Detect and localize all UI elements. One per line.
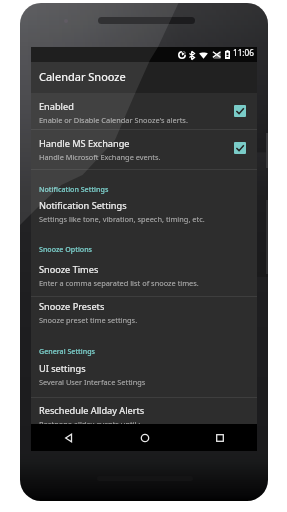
- button[interactable]: Toggle Handle MS Exchange: [234, 142, 246, 154]
- staticText: Snooze Presets: [39, 300, 105, 313]
- staticText: Handle MS Exchange: [39, 137, 130, 150]
- staticText: Enter a comma separated list of snooze t…: [39, 278, 244, 288]
- staticText: Snooze preset time settings.: [39, 315, 244, 325]
- staticText: Notification Settings: [39, 199, 127, 212]
- staticText: 11:06: [233, 47, 254, 58]
- staticText: Notification Settings: [39, 184, 109, 194]
- staticText: Enable or Disable Calendar Snooze's aler…: [39, 115, 244, 125]
- staticText: Several User Interface Settings: [39, 377, 244, 387]
- staticText: Settings like tone, vibration, speech, t…: [39, 214, 244, 224]
- button[interactable]: Home: [107, 424, 182, 451]
- button[interactable]: UI settings: [31, 355, 257, 391]
- button[interactable]: Toggle Enabled: [234, 105, 246, 117]
- staticText: Snooze Options: [39, 244, 93, 254]
- button[interactable]: Notification Settings: [31, 192, 257, 228]
- staticText: Postpone allday events until :: [39, 419, 244, 429]
- staticText: Handle Microsoft Exchange events.: [39, 152, 244, 162]
- staticText: Calendar Snooze: [39, 69, 126, 84]
- button[interactable]: Recent apps: [182, 424, 257, 451]
- staticText: Snooze Times: [39, 263, 99, 276]
- button[interactable]: Handle MS Exchange: [31, 130, 257, 166]
- button[interactable]: Snooze Presets: [31, 293, 257, 329]
- staticText: Reschedule Allday Alerts: [39, 404, 145, 417]
- staticText: General Settings: [39, 346, 96, 356]
- button[interactable]: Enabled: [31, 93, 257, 129]
- staticText: Enabled: [39, 100, 74, 113]
- staticText: UI settings: [39, 362, 86, 375]
- button[interactable]: Snooze Times: [31, 256, 257, 292]
- button[interactable]: Reschedule Allday Alerts: [31, 397, 257, 433]
- button[interactable]: Back: [31, 424, 107, 451]
